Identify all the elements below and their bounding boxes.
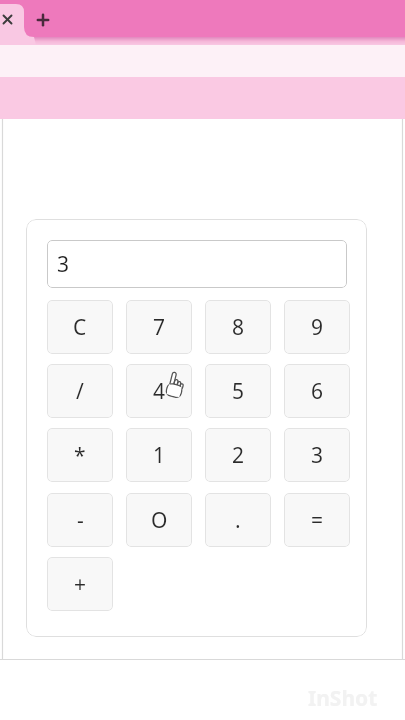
staticText: 7 [153,313,166,342]
button[interactable]: / [47,364,113,418]
button[interactable]: 6 [284,364,350,418]
button[interactable]: * [47,428,113,482]
button[interactable]: 4 [126,364,192,418]
button[interactable]: 3 [284,428,350,482]
staticText: 2 [232,441,245,470]
button[interactable]: + [47,557,113,611]
staticText: + [74,570,87,599]
staticText: 8 [232,313,245,342]
staticText: 5 [232,377,245,406]
button[interactable] [33,10,53,30]
staticText: InShot [308,684,378,713]
button[interactable]: 9 [284,300,350,354]
staticText: = [311,506,324,535]
staticText: * [74,441,86,470]
staticText: C [73,313,87,342]
button[interactable]: 7 [126,300,192,354]
staticText: 6 [311,377,324,406]
staticText: 9 [311,313,324,342]
button[interactable]: C [47,300,113,354]
staticText: 3 [57,250,70,279]
button[interactable]: 1 [126,428,192,482]
button[interactable]: O [126,493,192,547]
button[interactable]: . [205,493,271,547]
button[interactable]: 8 [205,300,271,354]
button[interactable]: 3 [47,240,347,288]
staticText: O [151,506,168,535]
staticText: 4 [153,377,166,406]
button[interactable]: 5 [205,364,271,418]
staticText: 3 [311,441,324,470]
staticText: . [235,506,241,535]
button[interactable]: - [47,493,113,547]
button[interactable]: 2 [205,428,271,482]
button[interactable] [0,4,24,37]
staticText: / [76,377,84,406]
staticText: - [77,506,84,535]
button[interactable]: = [284,493,350,547]
staticText: 1 [153,441,166,470]
